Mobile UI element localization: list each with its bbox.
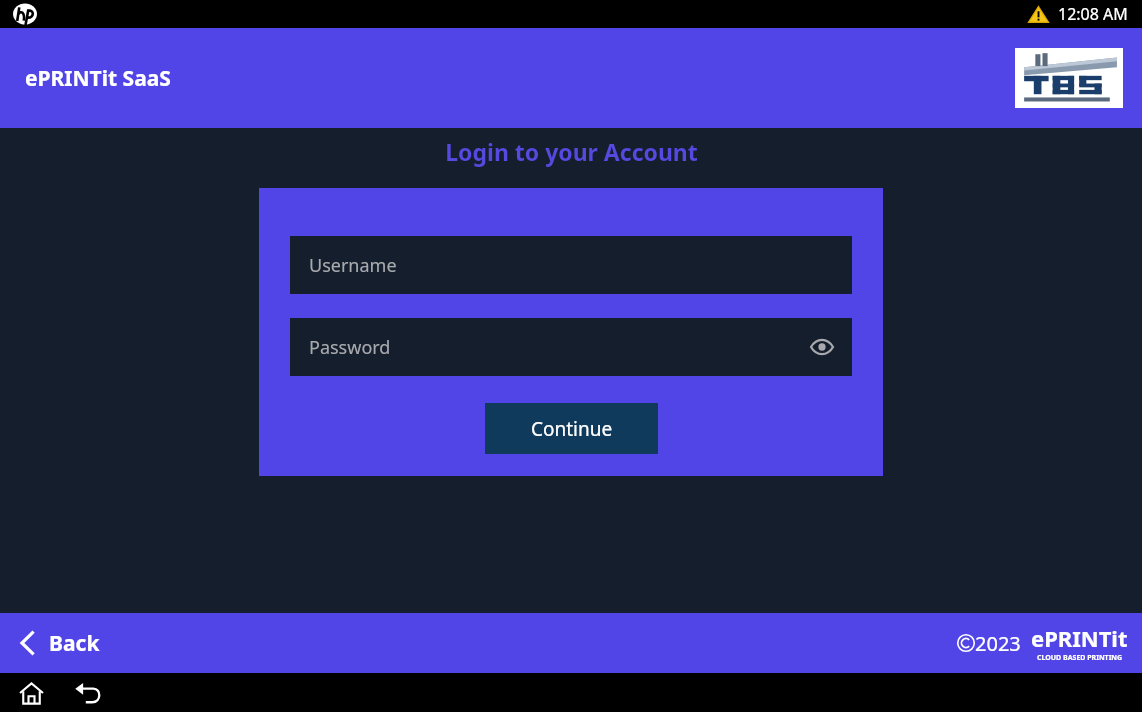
staticText: 2023 [975, 630, 1021, 657]
staticText: Back [49, 629, 100, 658]
button[interactable]: Back [0, 613, 118, 673]
staticText: Password [309, 335, 391, 360]
button[interactable]: Back [71, 676, 105, 710]
staticText: Continue [531, 416, 613, 442]
button[interactable]: Home [14, 676, 48, 710]
button[interactable]: Show password [805, 330, 839, 364]
button[interactable]: Password [290, 318, 852, 376]
staticText: Username [309, 253, 397, 278]
button[interactable]: Continue [485, 403, 658, 454]
staticText: Login to your Account [445, 136, 698, 167]
staticText: CLOUD BASED PRINTING [1037, 653, 1123, 663]
staticText: ePRINTit [1031, 623, 1128, 653]
button[interactable]: Username [290, 236, 852, 294]
staticText: 12:08 AM [1058, 3, 1128, 25]
staticText: ePRINTit SaaS [25, 64, 171, 93]
